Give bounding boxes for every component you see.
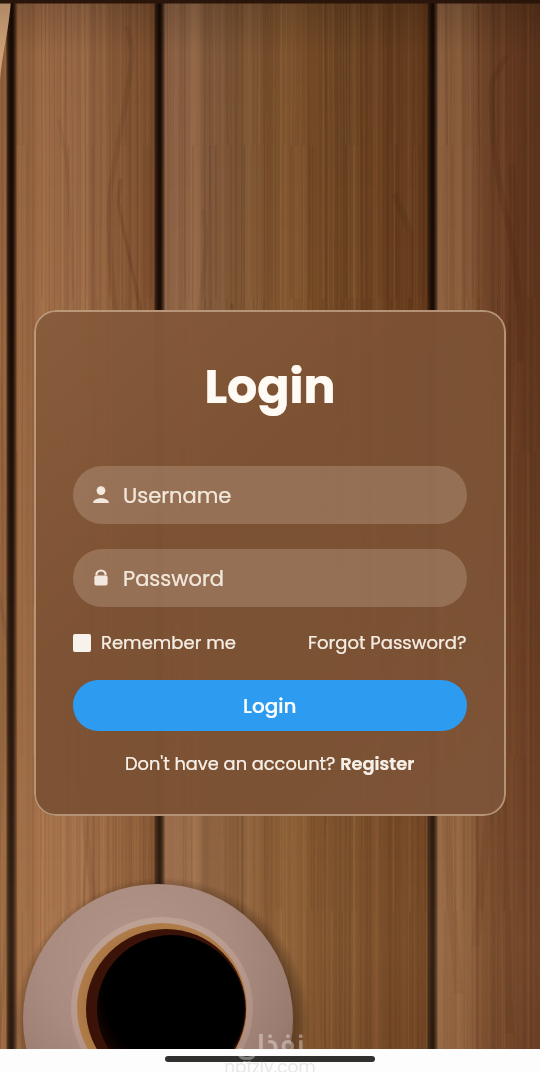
button[interactable]: Username: [73, 466, 467, 524]
staticText: Remember me: [101, 630, 236, 655]
button[interactable]: Forgot Password?: [308, 630, 467, 655]
button[interactable]: Password: [73, 549, 467, 607]
button[interactable]: Remember me: [73, 630, 236, 655]
staticText: npfzly.com: [0, 1055, 540, 1072]
staticText: Username: [123, 481, 232, 510]
staticText: Login: [243, 692, 297, 720]
staticText: Login: [34, 353, 506, 419]
button[interactable]: Home: [165, 1056, 375, 1062]
staticText: Don't have an account? Register: [125, 751, 415, 776]
button[interactable]: Don't have an account? Register: [34, 751, 506, 776]
staticText: نفذلي: [0, 1029, 540, 1059]
staticText: Password: [123, 564, 224, 593]
button[interactable]: Login: [73, 680, 467, 731]
